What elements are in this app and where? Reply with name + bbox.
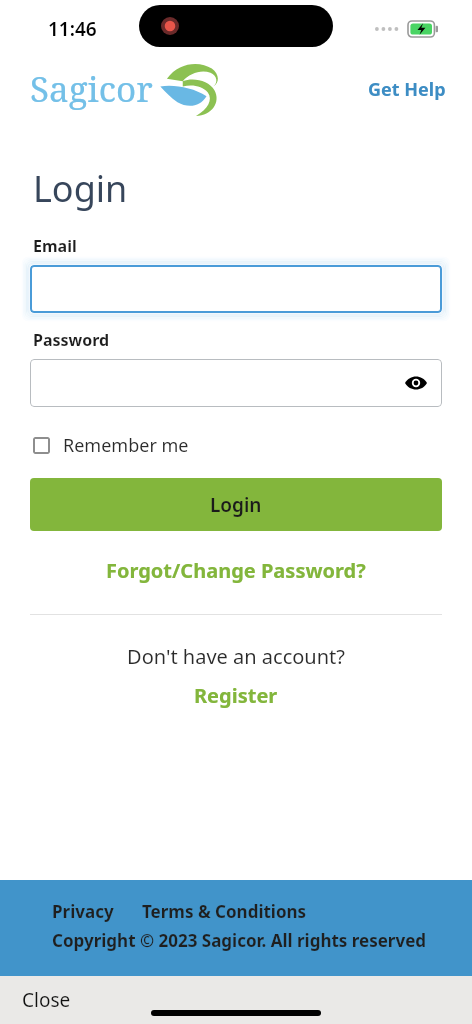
- staticText: Don't have an account?: [30, 643, 442, 670]
- staticText: 11:46: [48, 16, 97, 42]
- button[interactable]: Login: [30, 478, 442, 531]
- button[interactable]: Sagicor: [30, 59, 225, 119]
- staticText: Email: [33, 235, 77, 257]
- staticText: Remember me: [63, 433, 189, 458]
- button[interactable]: Remember me: [30, 431, 195, 460]
- button[interactable]: Show password: [400, 367, 432, 399]
- button[interactable]: Register: [30, 680, 442, 711]
- staticText: Terms & Conditions: [142, 900, 307, 923]
- staticText: Copyright © 2023 Sagicor. All rights res…: [52, 929, 427, 952]
- button[interactable]: Privacy: [52, 900, 114, 923]
- button[interactable]: Get Help: [360, 71, 454, 108]
- button[interactable]: [30, 265, 442, 313]
- staticText: Get Help: [368, 77, 446, 102]
- staticText: Close: [22, 987, 71, 1013]
- staticText: Login: [33, 164, 128, 213]
- staticText: Password: [33, 329, 110, 351]
- staticText: Login: [210, 492, 262, 518]
- button[interactable]: Show password: [30, 359, 442, 407]
- button[interactable]: Terms & Conditions: [142, 900, 307, 923]
- button[interactable]: Forgot/Change Password?: [30, 553, 442, 588]
- staticText: Sagicor: [30, 65, 153, 113]
- button[interactable]: Close: [14, 981, 79, 1019]
- staticText: Privacy: [52, 900, 114, 923]
- staticText: Register: [194, 682, 278, 709]
- staticText: Forgot/Change Password?: [106, 557, 366, 584]
